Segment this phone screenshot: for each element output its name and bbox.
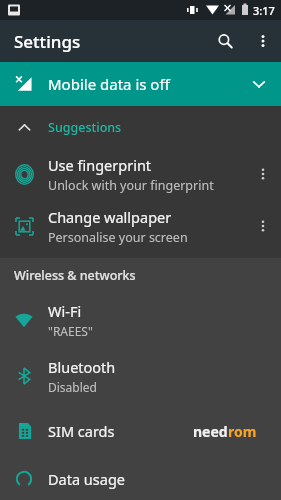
staticText: Mobile data is off [48,74,170,94]
button[interactable]: Wi-Fi [0,292,281,348]
staticText: Data usage [48,469,125,489]
staticText: Change wallpaper [48,207,172,227]
staticText: Wi-Fi [48,301,82,321]
staticText: Settings [14,30,81,53]
staticText: need [193,422,228,441]
button[interactable]: Use fingerprint [0,148,281,200]
staticText: 3:17 [253,3,275,18]
staticText: Suggestions [48,119,122,136]
staticText: Unlock with your fingerprint [48,177,214,194]
staticText: SIM cards [48,421,115,441]
button[interactable]: Bluetooth [0,348,281,404]
staticText: "RAEES" [48,323,93,339]
button[interactable]: SIM cards [0,404,281,458]
staticText: Use fingerprint [48,155,152,175]
button[interactable]: Change wallpaper [0,200,281,252]
staticText: Bluetooth [48,357,116,377]
button[interactable]: Expand [237,62,281,106]
staticText: Personalise your screen [48,229,188,246]
staticText: Wireless & networks [14,267,136,284]
button[interactable]: More options [245,200,281,252]
button[interactable]: More options [245,148,281,200]
button[interactable]: Suggestions [0,106,281,148]
button[interactable]: More options [245,23,281,59]
button[interactable]: Search [205,21,245,61]
staticText: rom [228,422,257,441]
staticText: Disabled [48,379,97,395]
button[interactable]: Mobile data is off [0,62,281,106]
button[interactable]: Data usage [0,458,281,500]
